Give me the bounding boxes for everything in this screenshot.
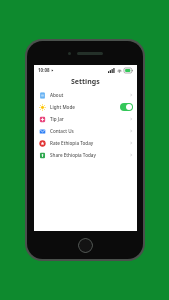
staticText: About — [50, 92, 64, 98]
button[interactable]: Light Mode toggle — [120, 103, 133, 111]
other: Home — [78, 238, 93, 253]
button[interactable]: Tip Jar — [34, 113, 137, 125]
button[interactable]: Rate Ethiopia Today — [34, 137, 137, 149]
button[interactable]: Light Mode — [34, 101, 137, 113]
button[interactable]: Contact Us — [34, 125, 137, 137]
staticText: Tip Jar — [50, 116, 64, 122]
button[interactable]: About — [34, 89, 137, 101]
staticText: Share Ethiopia Today — [50, 152, 96, 158]
staticText: 10:08 — [38, 67, 50, 73]
staticText: Light Mode — [50, 104, 75, 110]
staticText: Rate Ethiopia Today — [50, 140, 94, 146]
button[interactable]: Share Ethiopia Today — [34, 149, 137, 161]
staticText: Contact Us — [50, 128, 74, 134]
staticText: Settings — [71, 77, 100, 87]
